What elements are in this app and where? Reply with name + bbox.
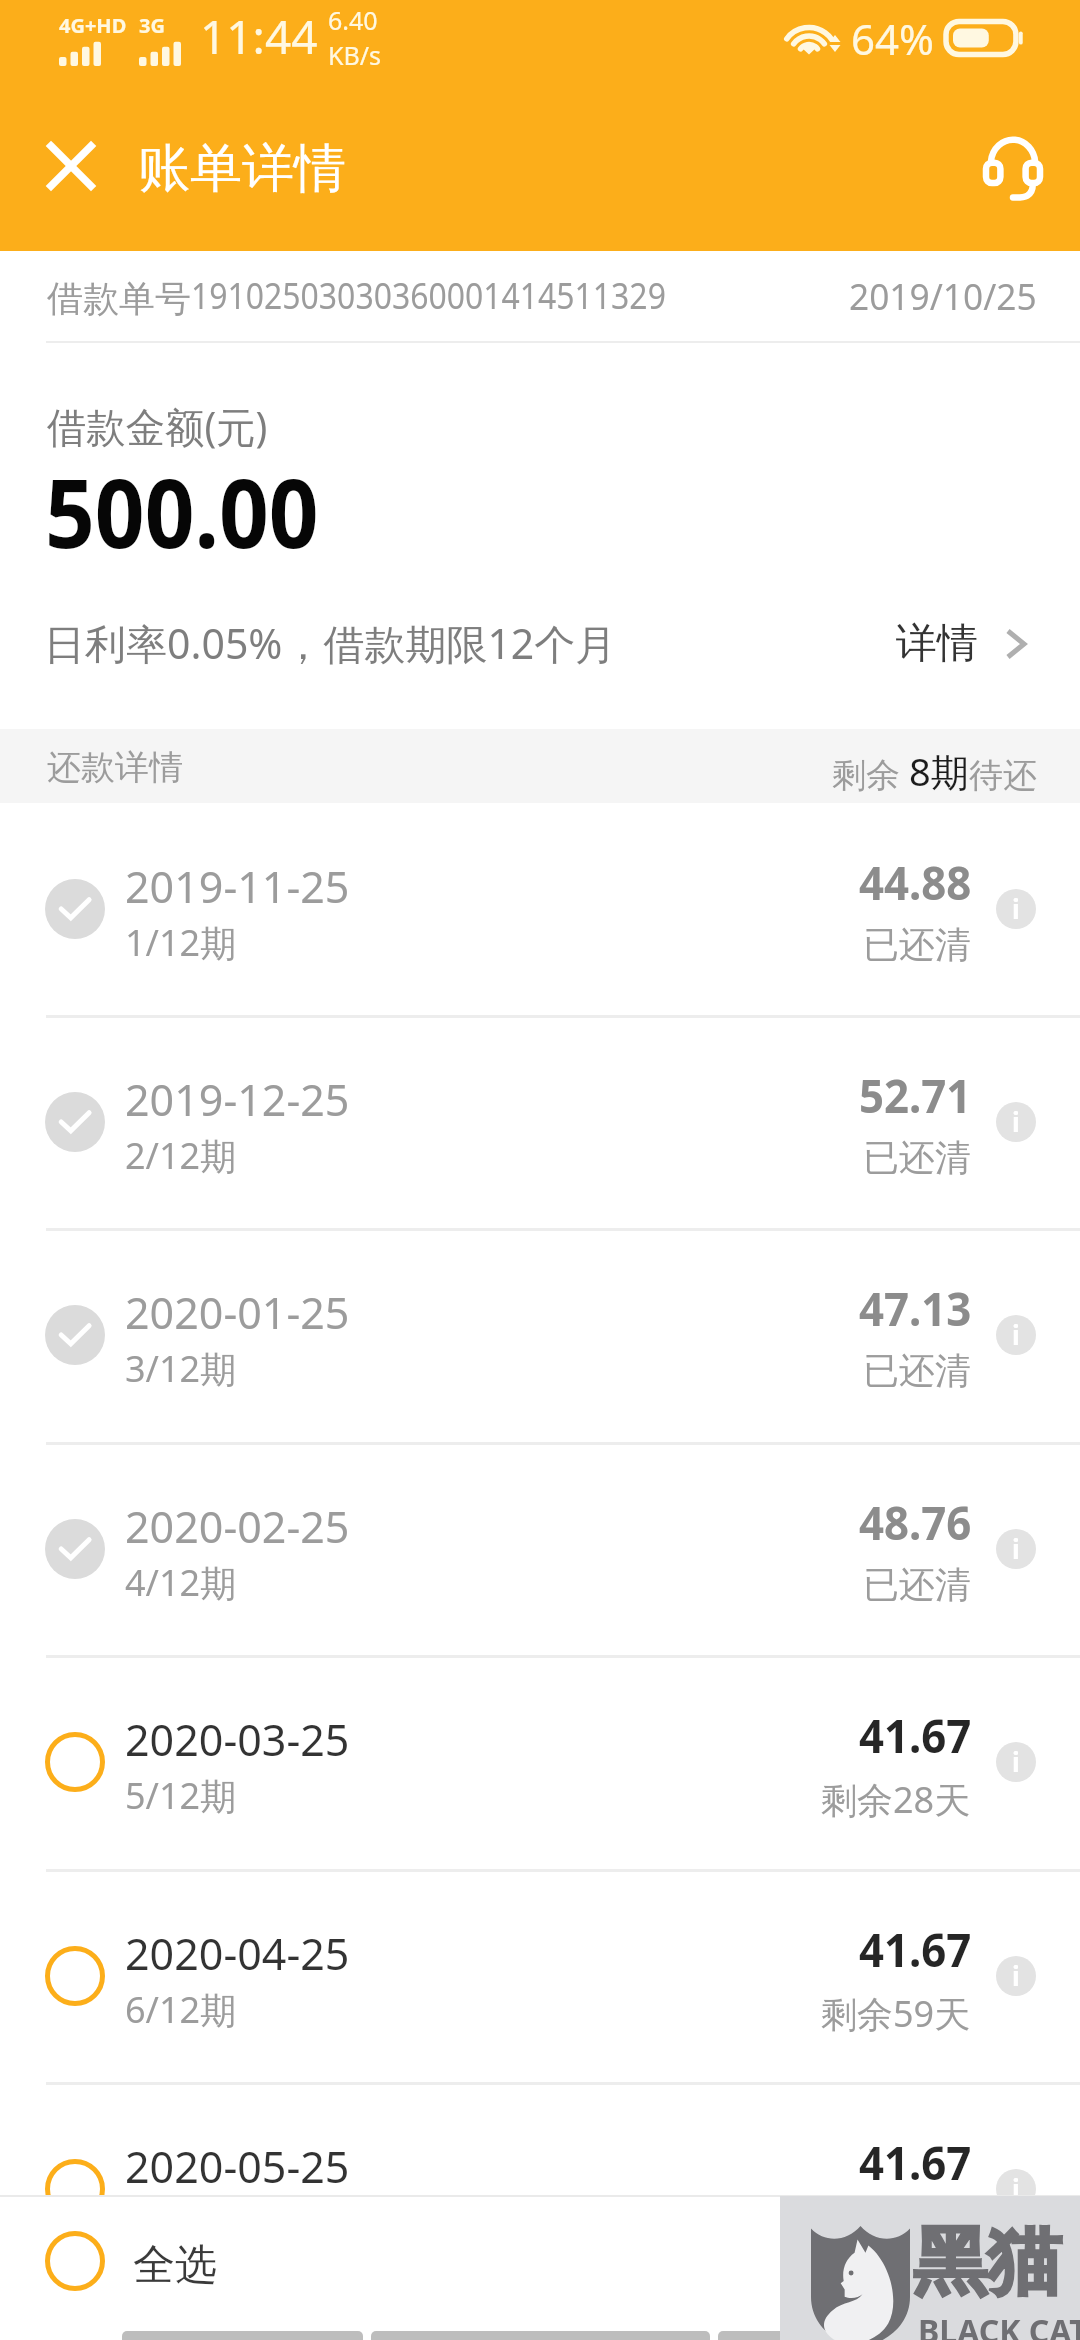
staticText: 2019-11-25 — [125, 857, 350, 916]
staticText: 剩余89天 — [821, 2202, 971, 2251]
staticText: 2/12期 — [125, 1131, 237, 1180]
staticText: 3/12期 — [125, 1344, 237, 1393]
staticText: i — [1012, 2171, 1020, 2206]
staticText: 账单详情 — [138, 136, 346, 202]
button[interactable]: Recents — [718, 2331, 959, 2340]
staticText: 41.67 — [859, 1704, 972, 1767]
button[interactable]: 全选 — [0, 2195, 1080, 2340]
button[interactable]: Back — [122, 2331, 363, 2340]
button[interactable]: 详情 — [896, 618, 1026, 670]
button[interactable]: Close — [0, 76, 124, 251]
staticText: 已还清 — [863, 1562, 971, 1607]
staticText: BLACK CAT — [918, 2308, 1080, 2340]
staticText: 6/12期 — [125, 1985, 237, 2034]
staticText: 6.40 — [328, 3, 378, 37]
staticText: i — [1012, 891, 1020, 926]
staticText: 7/12期 — [125, 2198, 237, 2247]
staticText: 黑猫 — [913, 2216, 1061, 2309]
button[interactable]: Info — [996, 2169, 1036, 2209]
staticText: KB/s — [328, 38, 382, 72]
button[interactable]: 2020-01-25 — [0, 1228, 1080, 1441]
staticText: i — [1012, 1104, 1020, 1139]
button[interactable]: Home — [371, 2331, 710, 2340]
staticText: 19102503030360001414511329 — [191, 271, 666, 320]
staticText: 剩余59天 — [821, 1989, 971, 2038]
staticText: 借款单号 — [47, 276, 191, 321]
staticText: 41.67 — [859, 2131, 972, 2194]
staticText: 2020-05-25 — [125, 2137, 350, 2196]
button[interactable]: Customer service — [948, 79, 1078, 254]
button[interactable]: Info — [996, 1956, 1036, 1996]
staticText: 8期 — [909, 745, 969, 797]
staticText: 还款详情 — [47, 746, 183, 789]
staticText: 待还 — [969, 754, 1037, 797]
staticText: 41.67 — [859, 1918, 972, 1981]
button[interactable]: Info — [996, 1742, 1036, 1782]
staticText: 64% — [851, 10, 934, 67]
staticText: 3G — [139, 12, 165, 39]
staticText: i — [1012, 1958, 1020, 1993]
staticText: i — [1012, 1317, 1020, 1352]
staticText: i — [1012, 1744, 1020, 1779]
staticText: 2020-02-25 — [125, 1497, 350, 1556]
staticText: i — [1012, 1531, 1020, 1566]
staticText: 剩余28天 — [821, 1775, 971, 1824]
staticText: 4G+HD — [59, 12, 127, 39]
staticText: 剩余 — [832, 751, 909, 797]
staticText: 2019-12-25 — [125, 1070, 350, 1129]
staticText: 借款金额(元) — [47, 398, 268, 454]
button[interactable]: 2019-12-25 — [0, 1015, 1080, 1228]
staticText: 2020-03-25 — [125, 1710, 350, 1769]
button[interactable]: Info — [996, 1529, 1036, 1569]
staticText: 已还清 — [863, 922, 971, 967]
staticText: 1/12期 — [125, 918, 237, 967]
staticText: 47.13 — [859, 1277, 972, 1340]
staticText: 已还清 — [863, 1348, 971, 1393]
staticText: 2020-04-25 — [125, 1924, 350, 1983]
button[interactable]: 2020-03-25 — [0, 1655, 1080, 1868]
staticText: 5/12期 — [125, 1771, 237, 1820]
staticText: 4/12期 — [125, 1558, 237, 1607]
staticText: 已还清 — [863, 1135, 971, 1180]
button[interactable]: Info — [996, 1315, 1036, 1355]
button[interactable]: 2020-04-25 — [0, 1869, 1080, 2082]
staticText: 11:44 — [200, 5, 318, 68]
staticText: 2020-01-25 — [125, 1283, 350, 1342]
staticText: 44.88 — [859, 851, 972, 914]
button[interactable]: 2019-11-25 — [0, 802, 1080, 1015]
staticText: 52.71 — [859, 1064, 972, 1127]
staticText: 500.00 — [45, 446, 319, 575]
button[interactable]: 2020-05-25 — [0, 2082, 1080, 2295]
staticText: 48.76 — [859, 1491, 972, 1554]
staticText: 2019/10/25 — [849, 272, 1037, 321]
staticText: 全选 — [133, 2239, 217, 2292]
staticText: 详情 — [896, 618, 978, 670]
button[interactable]: Info — [996, 1102, 1036, 1142]
button[interactable]: 2020-02-25 — [0, 1442, 1080, 1655]
staticText: 日利率0.05%，借款期限12个月 — [44, 615, 617, 671]
button[interactable]: Info — [996, 889, 1036, 929]
